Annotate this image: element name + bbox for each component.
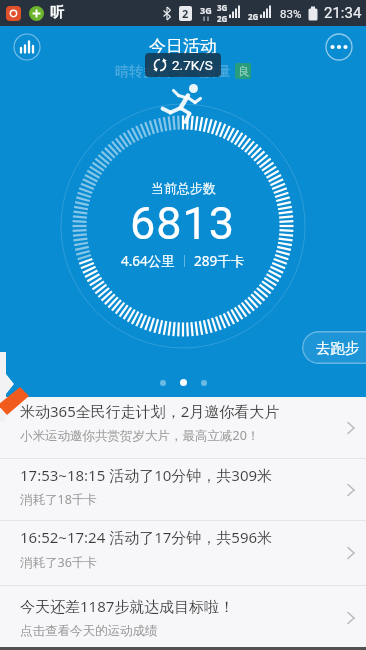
staticText: 去跑步 bbox=[316, 339, 360, 357]
staticText: 4.64公里 bbox=[121, 252, 175, 270]
staticText: 17:53~18:15 活动了10分钟，共309米 bbox=[20, 465, 273, 485]
button[interactable]: 米动365全民行走计划，2月邀你看大片 bbox=[0, 397, 366, 458]
staticText: 2.7K/S bbox=[172, 57, 213, 73]
button[interactable]: 17:53~18:15 活动了10分钟，共309米 bbox=[0, 459, 366, 520]
staticText: 消耗了18千卡 bbox=[20, 491, 97, 508]
staticText: 消耗了36千卡 bbox=[20, 554, 97, 571]
button[interactable]: 今天还差1187步就达成目标啦！ bbox=[0, 586, 366, 650]
staticText: 3G bbox=[200, 4, 212, 16]
button[interactable] bbox=[0, 26, 54, 66]
staticText: 6813 bbox=[130, 197, 236, 250]
staticText: 听 bbox=[50, 4, 64, 22]
staticText: 当前总步数 bbox=[151, 180, 216, 196]
staticText: 3G bbox=[217, 2, 228, 13]
button[interactable] bbox=[312, 26, 366, 66]
button[interactable]: 去跑步 bbox=[302, 331, 366, 364]
staticText: 小米运动邀你共赏贺岁大片，最高立减20！ bbox=[20, 427, 260, 444]
staticText: 晴转多云 空气质量 bbox=[115, 61, 231, 80]
staticText: 289千卡 bbox=[194, 252, 245, 270]
staticText: 今日活动 bbox=[149, 36, 217, 57]
staticText: 今天还差1187步就达成目标啦！ bbox=[20, 596, 235, 616]
button[interactable]: 16:52~17:24 活动了17分钟，共596米 bbox=[0, 521, 366, 585]
staticText: 2G bbox=[248, 11, 259, 22]
staticText: 米动365全民行走计划，2月邀你看大片 bbox=[20, 401, 280, 421]
staticText: 良 bbox=[238, 64, 249, 78]
staticText: 83% bbox=[280, 7, 302, 20]
button[interactable]: 2.7K/S bbox=[145, 53, 221, 77]
staticText: 2G bbox=[217, 13, 228, 24]
staticText: 16:52~17:24 活动了17分钟，共596米 bbox=[20, 527, 273, 547]
staticText: 2 bbox=[182, 6, 189, 21]
staticText: 点击查看今天的运动成绩 bbox=[20, 623, 158, 639]
staticText: 21:34 bbox=[324, 4, 362, 22]
